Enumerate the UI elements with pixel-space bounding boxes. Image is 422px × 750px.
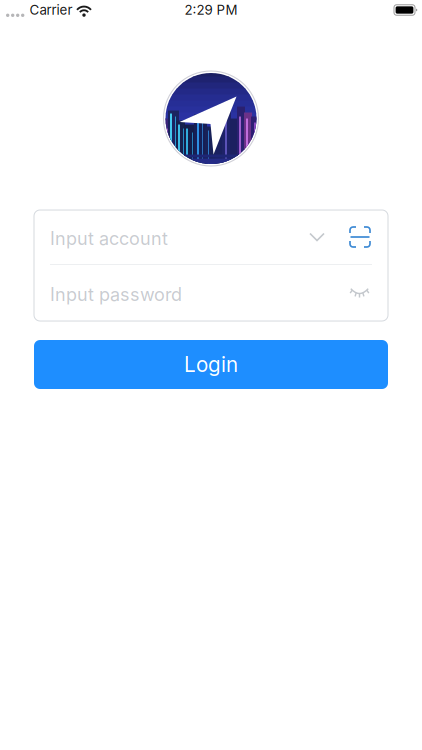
button[interactable]: Login xyxy=(34,340,388,389)
button[interactable]: Input password xyxy=(34,265,336,321)
staticText: Input password xyxy=(50,284,182,305)
button[interactable]: Show password xyxy=(336,265,388,321)
staticText: Input account xyxy=(50,228,168,249)
staticText: Carrier xyxy=(29,2,72,18)
staticText: 2:29 PM xyxy=(184,2,237,18)
button[interactable]: Scan QR code xyxy=(325,210,388,264)
button[interactable]: Input account xyxy=(34,210,325,264)
staticText: Login xyxy=(184,352,238,377)
